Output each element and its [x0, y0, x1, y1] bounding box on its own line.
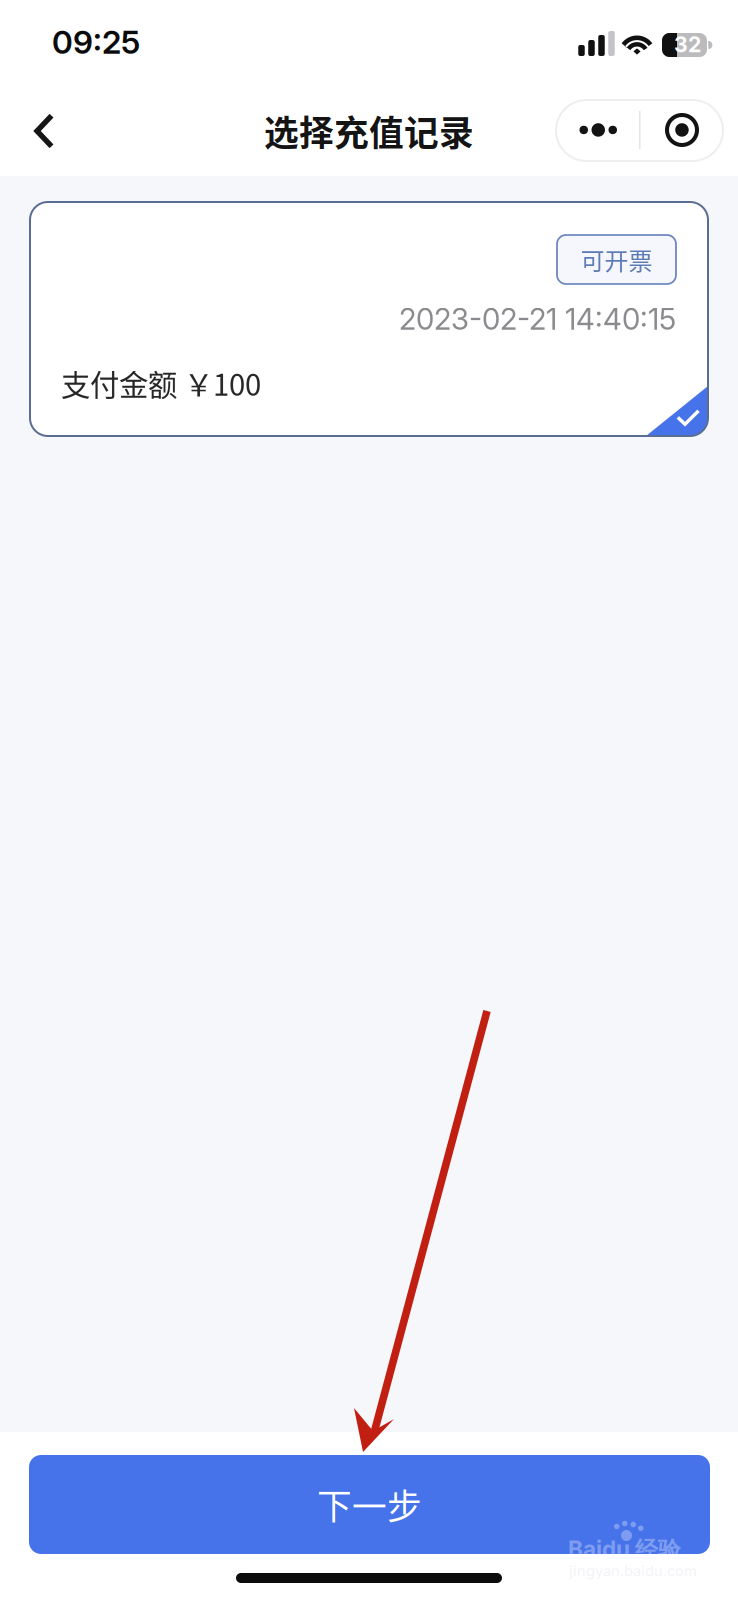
staticText: 下一步	[317, 1479, 422, 1530]
staticText: 选择充值记录	[264, 106, 474, 156]
staticText: 支付金额 ￥100	[61, 362, 261, 404]
staticText: jingyan.baidu.com	[569, 1562, 697, 1580]
staticText: 32	[674, 32, 701, 57]
button[interactable]: 下一步	[29, 1455, 710, 1554]
staticText: 可开票	[580, 242, 652, 277]
button[interactable]: 返回	[8, 95, 80, 167]
staticText: Baidu 经验	[568, 1536, 681, 1564]
staticText: 09:25	[52, 23, 140, 61]
button[interactable]: 可开票	[30, 202, 708, 436]
staticText: 2023-02-21 14:40:15	[399, 301, 676, 337]
button[interactable]: 更多	[556, 100, 723, 161]
